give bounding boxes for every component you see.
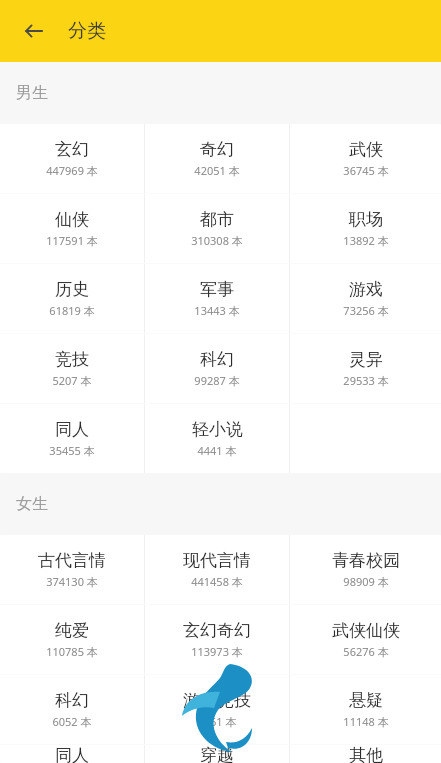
staticText: 奇幻 [200, 139, 234, 160]
button[interactable]: 游戏 [290, 264, 441, 333]
button[interactable]: 历史 [0, 264, 144, 333]
staticText: 4861 本 [197, 714, 237, 729]
button[interactable]: Back [12, 9, 56, 53]
staticText: 73256 本 [343, 303, 389, 318]
button[interactable]: 穿越 [145, 745, 289, 763]
button[interactable]: 青春校园 [290, 535, 441, 604]
staticText: 女生 [16, 494, 48, 514]
staticText: 军事 [200, 279, 234, 300]
staticText: 其他 [349, 745, 383, 763]
staticText: 游戏竞技 [183, 690, 251, 711]
staticText: 110785 本 [46, 644, 98, 659]
button[interactable]: 仙侠 [0, 194, 144, 263]
staticText: 99287 本 [194, 373, 240, 388]
staticText: 13892 本 [343, 233, 389, 248]
staticText: 6052 本 [52, 714, 92, 729]
staticText: 纯爱 [55, 620, 89, 641]
staticText: 仙侠 [55, 209, 89, 230]
button[interactable]: 竞技 [0, 334, 144, 403]
staticText: 科幻 [200, 349, 234, 370]
staticText: 武侠 [349, 139, 383, 160]
staticText: 374130 本 [46, 574, 98, 589]
staticText: 310308 本 [191, 233, 243, 248]
staticText: 穿越 [200, 745, 234, 763]
button[interactable]: 武侠 [290, 124, 441, 193]
staticText: 竞技 [55, 349, 89, 370]
staticText: 分类 [68, 19, 106, 43]
staticText: 42051 本 [194, 163, 240, 178]
staticText: 同人 [55, 745, 89, 763]
staticText: 轻小说 [192, 419, 243, 440]
staticText: 113973 本 [191, 644, 243, 659]
staticText: 历史 [55, 279, 89, 300]
staticText: 游戏 [349, 279, 383, 300]
staticText: 117591 本 [46, 233, 98, 248]
staticText: 441458 本 [191, 574, 243, 589]
button[interactable]: 轻小说 [145, 404, 289, 473]
button[interactable]: 玄幻奇幻 [145, 605, 289, 674]
staticText: 4441 本 [197, 443, 237, 458]
staticText: 447969 本 [46, 163, 98, 178]
button[interactable]: 科幻 [0, 675, 144, 744]
staticText: 武侠仙侠 [332, 620, 400, 641]
staticText: 男生 [16, 83, 48, 103]
button[interactable]: 武侠仙侠 [290, 605, 441, 674]
staticText: 29533 本 [343, 373, 389, 388]
staticText: 都市 [200, 209, 234, 230]
button[interactable]: 古代言情 [0, 535, 144, 604]
staticText: 61819 本 [49, 303, 95, 318]
staticText: 科幻 [55, 690, 89, 711]
button[interactable]: 悬疑 [290, 675, 441, 744]
staticText: 玄幻奇幻 [183, 620, 251, 641]
button[interactable]: 奇幻 [145, 124, 289, 193]
button[interactable]: 同人 [0, 404, 144, 473]
staticText: 56276 本 [343, 644, 389, 659]
staticText: 36745 本 [343, 163, 389, 178]
button[interactable]: 玄幻 [0, 124, 144, 193]
staticText: 古代言情 [38, 550, 106, 571]
button[interactable]: 灵异 [290, 334, 441, 403]
staticText: 5207 本 [52, 373, 92, 388]
staticText: 11148 本 [343, 714, 389, 729]
button[interactable]: 现代言情 [145, 535, 289, 604]
staticText: 悬疑 [349, 690, 383, 711]
button[interactable]: 科幻 [145, 334, 289, 403]
staticText: 青春校园 [332, 550, 400, 571]
button[interactable]: 游戏竞技 [145, 675, 289, 744]
staticText: 35455 本 [49, 443, 95, 458]
staticText: 98909 本 [343, 574, 389, 589]
staticText: 同人 [55, 419, 89, 440]
staticText: 13443 本 [194, 303, 240, 318]
button[interactable]: 都市 [145, 194, 289, 263]
button[interactable]: 纯爱 [0, 605, 144, 674]
staticText: 灵异 [349, 349, 383, 370]
staticText: 现代言情 [183, 550, 251, 571]
staticText: 职场 [349, 209, 383, 230]
button[interactable]: 同人 [0, 745, 144, 763]
button[interactable]: 职场 [290, 194, 441, 263]
button[interactable]: 军事 [145, 264, 289, 333]
button[interactable]: 其他 [290, 745, 441, 763]
staticText: 玄幻 [55, 139, 89, 160]
